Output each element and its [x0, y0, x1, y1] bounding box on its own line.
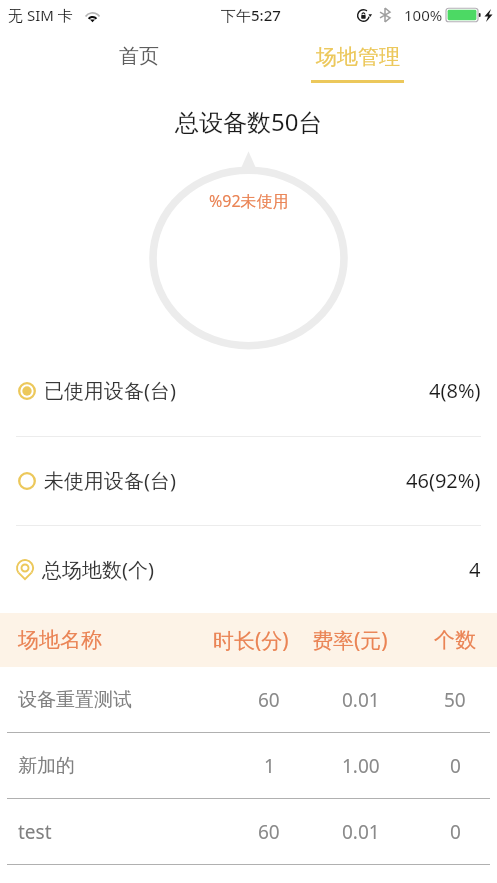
- staticText: 0.01: [342, 687, 380, 713]
- staticText: 0: [450, 819, 461, 845]
- staticText: 无 SIM 卡: [8, 5, 73, 25]
- button[interactable]: 设备重置测试: [0, 667, 497, 733]
- staticText: 设备重置测试: [18, 688, 132, 712]
- staticText: 总设备数50台: [175, 105, 323, 138]
- staticText: test: [18, 819, 52, 845]
- other: Rotation lock: [357, 9, 371, 22]
- staticText: 总场地数(个): [42, 556, 154, 583]
- staticText: 已使用设备(台): [44, 377, 176, 404]
- button[interactable]: 总场地数(个): [0, 525, 497, 614]
- button[interactable]: test: [0, 799, 497, 865]
- staticText: 0: [450, 753, 461, 779]
- staticText: 60: [258, 687, 280, 713]
- staticText: 46(92%): [406, 467, 481, 494]
- staticText: %92未使用: [209, 190, 289, 212]
- staticText: 4: [469, 556, 481, 583]
- other: Charging: [484, 9, 493, 22]
- other: Battery 100 percent: [446, 7, 482, 23]
- button[interactable]: 已使用设备(台): [0, 346, 497, 435]
- button[interactable]: 场地管理: [248, 30, 467, 88]
- staticText: 0.01: [342, 819, 380, 845]
- button[interactable]: 首页: [30, 30, 248, 88]
- staticText: 场地管理: [316, 44, 400, 70]
- staticText: 场地名称: [18, 627, 102, 653]
- staticText: 1.00: [342, 753, 380, 779]
- staticText: 个数: [434, 627, 476, 653]
- button[interactable]: 未使用设备(台): [0, 436, 497, 525]
- staticText: 1: [264, 753, 275, 779]
- button[interactable]: 新加的: [0, 733, 497, 799]
- staticText: 时长(分): [213, 626, 289, 655]
- staticText: 费率(元): [312, 626, 388, 655]
- staticText: 100%: [404, 5, 443, 25]
- staticText: 首页: [119, 44, 159, 69]
- staticText: 新加的: [18, 754, 75, 778]
- staticText: 60: [258, 819, 280, 845]
- staticText: 下午5:27: [221, 5, 281, 25]
- staticText: 50: [444, 687, 466, 713]
- staticText: 4(8%): [429, 377, 481, 404]
- staticText: 未使用设备(台): [44, 467, 176, 494]
